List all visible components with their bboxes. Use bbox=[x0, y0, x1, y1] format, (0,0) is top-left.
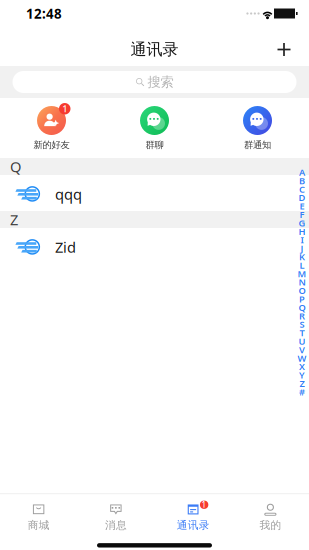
staticText: A bbox=[299, 166, 305, 178]
button[interactable]: 商城 bbox=[0, 502, 77, 532]
staticText: G bbox=[298, 217, 305, 229]
staticText: J bbox=[300, 242, 303, 254]
staticText: 搜索 bbox=[147, 74, 173, 90]
staticText: Zid bbox=[55, 237, 76, 257]
staticText: 新的好友 bbox=[33, 139, 69, 151]
staticText: 群聊 bbox=[145, 139, 163, 151]
button[interactable]: 群通知 bbox=[206, 98, 309, 158]
staticText: P bbox=[299, 293, 305, 305]
button[interactable]: 消息 bbox=[77, 502, 154, 532]
staticText: S bbox=[299, 318, 304, 330]
staticText: M bbox=[297, 267, 306, 280]
staticText: 商城 bbox=[28, 519, 50, 532]
staticText: 通讯录 bbox=[177, 519, 210, 532]
staticText: Z bbox=[299, 377, 304, 390]
staticText: H bbox=[298, 225, 305, 237]
staticText: qqq bbox=[55, 184, 82, 204]
staticText: X bbox=[299, 360, 305, 373]
staticText: I bbox=[300, 234, 303, 246]
staticText: Q bbox=[10, 157, 21, 176]
staticText: V bbox=[299, 343, 305, 356]
staticText: 1 bbox=[202, 499, 207, 510]
staticText: W bbox=[297, 352, 306, 364]
staticText: # bbox=[299, 386, 305, 398]
staticText: E bbox=[299, 200, 304, 212]
staticText: 12:48 bbox=[26, 5, 62, 22]
button[interactable]: qqq bbox=[0, 175, 309, 211]
staticText: L bbox=[299, 259, 304, 271]
staticText: B bbox=[299, 174, 305, 187]
button[interactable]: Add contact bbox=[267, 29, 301, 63]
staticText: R bbox=[299, 310, 305, 322]
staticText: D bbox=[298, 191, 305, 204]
staticText: T bbox=[299, 326, 304, 339]
button[interactable]: 搜索 bbox=[12, 71, 296, 93]
staticText: Y bbox=[299, 369, 305, 381]
staticText: 消息 bbox=[105, 519, 127, 532]
button[interactable]: 群聊 bbox=[103, 98, 206, 158]
staticText: Q bbox=[298, 301, 305, 314]
staticText: 1 bbox=[62, 103, 67, 115]
button[interactable]: 我的 bbox=[232, 502, 309, 532]
staticText: O bbox=[298, 284, 305, 297]
staticText: C bbox=[299, 183, 305, 195]
staticText: F bbox=[299, 208, 304, 221]
staticText: U bbox=[298, 335, 305, 347]
staticText: K bbox=[299, 250, 305, 263]
staticText: Z bbox=[10, 210, 18, 229]
button[interactable]: Zid bbox=[0, 228, 309, 264]
button[interactable]: 1 bbox=[154, 502, 232, 532]
staticText: 群通知 bbox=[244, 139, 271, 151]
staticText: 通讯录 bbox=[130, 40, 178, 59]
staticText: N bbox=[298, 276, 305, 288]
button[interactable]: 1 bbox=[0, 98, 103, 158]
staticText: 我的 bbox=[259, 519, 281, 532]
